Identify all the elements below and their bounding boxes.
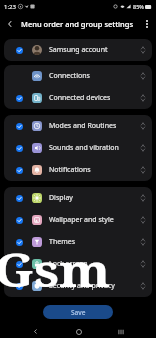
staticText: Menu order and group settings <box>21 19 134 29</box>
staticText: Modes and Routines <box>49 121 138 131</box>
button[interactable]: Samsung account <box>4 39 152 61</box>
staticText: Wallpaper and style <box>49 215 138 225</box>
staticText: Gsm <box>0 238 111 300</box>
staticText: Samsung account <box>49 45 138 55</box>
button[interactable]: Modes and Routines <box>4 115 152 137</box>
staticText: Display <box>49 193 138 203</box>
button[interactable]: Lock screen <box>4 253 152 275</box>
button[interactable]: Connected devices <box>4 87 152 109</box>
staticText: Connected devices <box>49 93 138 103</box>
button[interactable]: Notifications <box>4 159 152 181</box>
staticText: Sounds and vibration <box>49 143 138 153</box>
staticText: 85% <box>133 3 144 10</box>
button[interactable]: Connections <box>4 65 152 87</box>
button[interactable]: Save <box>43 305 113 319</box>
staticText: Connections <box>49 71 138 81</box>
staticText: 1:23 <box>4 3 16 11</box>
button[interactable]: Home <box>72 325 85 338</box>
staticText: Security and privacy <box>49 281 138 291</box>
button[interactable]: Back <box>29 325 42 338</box>
button[interactable]: Security and privacy <box>4 275 152 297</box>
staticText: Save <box>71 308 86 317</box>
button[interactable]: Wallpaper and style <box>4 209 152 231</box>
staticText: Lock screen <box>49 259 138 269</box>
button[interactable]: More options <box>138 15 156 33</box>
button[interactable]: Themes <box>4 231 152 253</box>
button[interactable]: Navigate up <box>0 14 20 34</box>
button[interactable]: Recent apps <box>114 325 127 338</box>
button[interactable]: Display <box>4 187 152 209</box>
staticText: Themes <box>49 237 138 247</box>
button[interactable]: Sounds and vibration <box>4 137 152 159</box>
staticText: Notifications <box>49 165 138 175</box>
